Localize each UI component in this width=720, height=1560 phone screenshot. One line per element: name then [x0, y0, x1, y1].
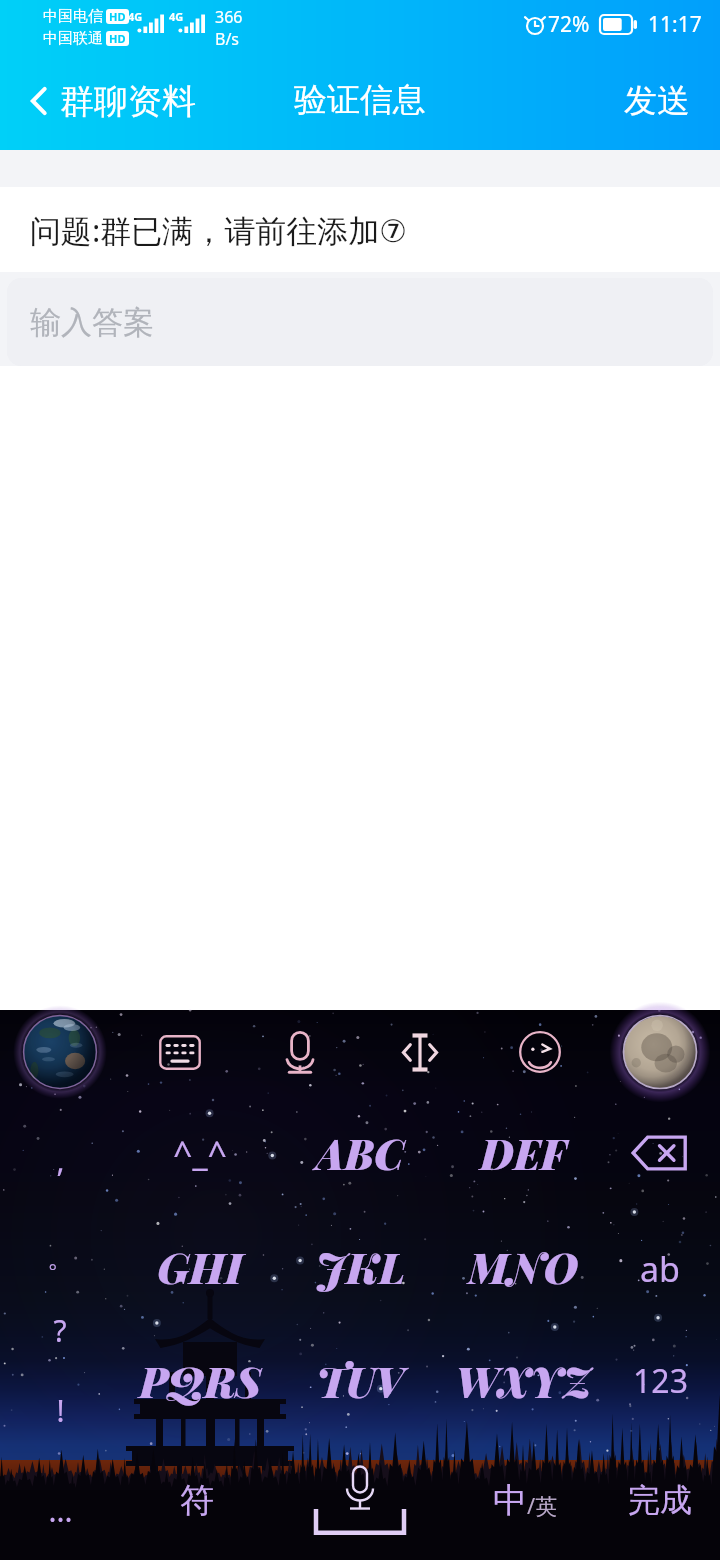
staticText: MNO	[468, 1239, 578, 1295]
staticText: 问题:群已满，请前往添加⑦	[30, 209, 408, 251]
button[interactable]: DEF	[443, 1108, 603, 1198]
staticText: 中	[493, 1479, 527, 1522]
staticText: 发送	[624, 80, 690, 122]
button[interactable]: Backspace	[600, 1108, 720, 1198]
staticText: 366	[215, 6, 243, 28]
button[interactable]: PQRS	[120, 1336, 280, 1426]
button[interactable]: 符	[127, 1455, 267, 1545]
staticText: PQRS	[139, 1353, 261, 1409]
button[interactable]: 123	[590, 1336, 720, 1426]
staticText: GHI	[157, 1239, 243, 1295]
staticText: HD	[109, 31, 126, 46]
staticText: 完成	[628, 1480, 692, 1520]
staticText: ...	[48, 1490, 73, 1531]
staticText: 11:17	[648, 10, 702, 39]
button[interactable]: 中	[455, 1455, 595, 1545]
staticText: DEF	[480, 1125, 566, 1181]
button[interactable]: Theme	[13, 1005, 107, 1099]
button[interactable]: 完成	[590, 1455, 720, 1545]
staticText: 验证信息	[294, 79, 426, 121]
button[interactable]: ?	[0, 1285, 130, 1375]
button[interactable]: Keyboard layout	[140, 1012, 220, 1092]
staticText: 输入答案	[30, 303, 154, 342]
staticText: 72%	[548, 10, 590, 39]
staticText: 4G	[128, 9, 143, 24]
button[interactable]: !	[0, 1365, 130, 1455]
button[interactable]: TUV	[280, 1336, 440, 1426]
button[interactable]: 群聊资料	[26, 52, 196, 150]
button[interactable]: 。	[0, 1213, 130, 1303]
button[interactable]: ABC	[280, 1108, 440, 1198]
staticText: ?	[53, 1310, 67, 1351]
staticText: !	[56, 1390, 65, 1431]
button[interactable]: ...	[0, 1465, 130, 1555]
staticText: 中国联通	[43, 29, 103, 48]
staticText: B/s	[215, 28, 240, 50]
button[interactable]: ab	[590, 1224, 720, 1314]
button[interactable]: JKL	[280, 1222, 440, 1312]
staticText: 123	[633, 1359, 688, 1403]
staticText: HD	[109, 9, 126, 24]
button[interactable]: GHI	[120, 1222, 280, 1312]
button[interactable]: 发送	[624, 52, 690, 150]
staticText: JKL	[316, 1239, 405, 1295]
staticText: TUV	[316, 1353, 404, 1409]
staticText: ABC	[316, 1125, 404, 1181]
button[interactable]: WXYZ	[443, 1336, 603, 1426]
staticText: WXYZ	[455, 1353, 591, 1409]
staticText: ^_^	[173, 1130, 227, 1176]
button[interactable]: 输入答案	[7, 278, 713, 366]
staticText: 符	[180, 1479, 214, 1522]
staticText: 群聊资料	[60, 80, 196, 123]
button[interactable]: Move cursor	[380, 1012, 460, 1092]
button[interactable]: ,	[0, 1115, 130, 1205]
button[interactable]: Settings	[613, 1005, 707, 1099]
staticText: 4G	[169, 9, 184, 24]
staticText: ,	[56, 1140, 65, 1181]
button[interactable]: ^_^	[130, 1108, 270, 1198]
staticText: /英	[527, 1490, 558, 1520]
button[interactable]: Space	[280, 1452, 440, 1548]
staticText: 中国电信	[43, 7, 103, 26]
staticText: ab	[640, 1246, 680, 1292]
button[interactable]: Voice input	[260, 1012, 340, 1092]
button[interactable]: MNO	[443, 1222, 603, 1312]
staticText: 。	[47, 1242, 73, 1275]
button[interactable]: Emoji	[500, 1012, 580, 1092]
